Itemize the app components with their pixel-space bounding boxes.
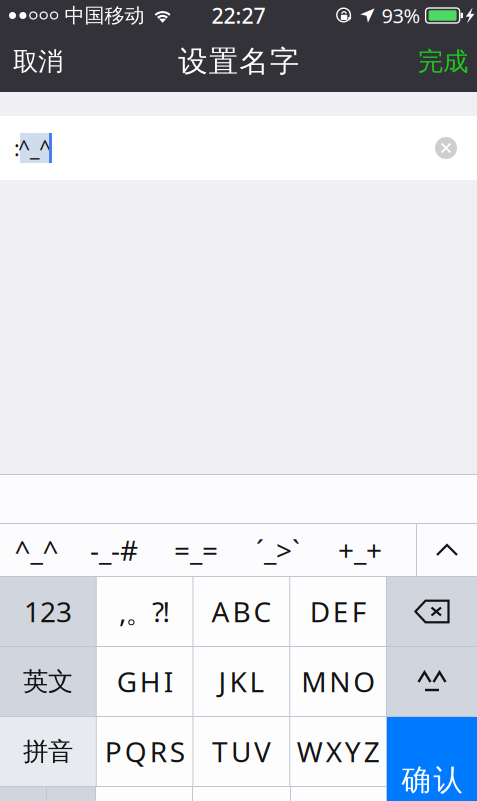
button[interactable]: 确认	[387, 717, 477, 801]
staticText: ´_>`	[256, 531, 300, 569]
button[interactable]: -_-#	[73, 524, 155, 576]
staticText: GHI	[117, 663, 173, 700]
button[interactable]: GHI	[97, 647, 193, 716]
button[interactable]: 取消	[0, 32, 77, 91]
button[interactable]: DEF	[290, 577, 386, 646]
button[interactable]: Expand candidates	[417, 524, 477, 576]
button[interactable]: PQRS	[97, 717, 193, 786]
staticText: WXYZ	[297, 733, 380, 770]
staticText: 22:27	[211, 1, 265, 30]
staticText: 中国移动	[65, 3, 145, 28]
staticText: 123	[24, 593, 72, 630]
button[interactable]: +_+	[319, 524, 401, 576]
staticText: PQRS	[105, 733, 185, 770]
staticText: 完成	[418, 46, 468, 77]
staticText: -_-#	[90, 531, 138, 569]
button[interactable]: JKL	[193, 647, 289, 716]
staticText: DEF	[310, 593, 367, 630]
button[interactable]: ,。?!	[97, 577, 193, 646]
button[interactable]: ^_^	[0, 524, 73, 576]
button[interactable]: 123	[0, 577, 96, 646]
staticText: 确认	[401, 762, 462, 798]
staticText: 93%	[382, 2, 421, 29]
staticText: ^_^	[14, 531, 58, 569]
staticText: ^_^	[18, 134, 51, 162]
button[interactable]: 拼音	[0, 717, 96, 786]
button[interactable]: Delete	[387, 577, 477, 646]
button[interactable]: ´_>`	[237, 524, 319, 576]
button[interactable]: =_=	[155, 524, 237, 576]
staticText: ABC	[211, 593, 271, 630]
button[interactable]: Clear text	[424, 126, 477, 170]
button[interactable]: WXYZ	[290, 717, 386, 786]
staticText: 取消	[13, 46, 63, 77]
staticText: :	[14, 134, 20, 162]
staticText: MNO	[301, 663, 375, 700]
button[interactable]: TUV	[193, 717, 289, 786]
staticText: +_+	[338, 531, 382, 569]
button[interactable]: MNO	[290, 647, 386, 716]
staticText: 拼音	[23, 736, 73, 767]
button[interactable]: 完成	[404, 32, 477, 91]
staticText: 设置名字	[178, 43, 299, 79]
staticText: 英文	[23, 666, 73, 697]
button[interactable]: Emoticons	[387, 647, 477, 716]
button[interactable]: 英文	[0, 647, 96, 716]
staticText: ,。?!	[119, 593, 170, 630]
staticText: JKL	[218, 663, 264, 700]
staticText: TUV	[212, 733, 271, 770]
staticText: =_=	[174, 531, 218, 569]
button[interactable]: ABC	[193, 577, 289, 646]
